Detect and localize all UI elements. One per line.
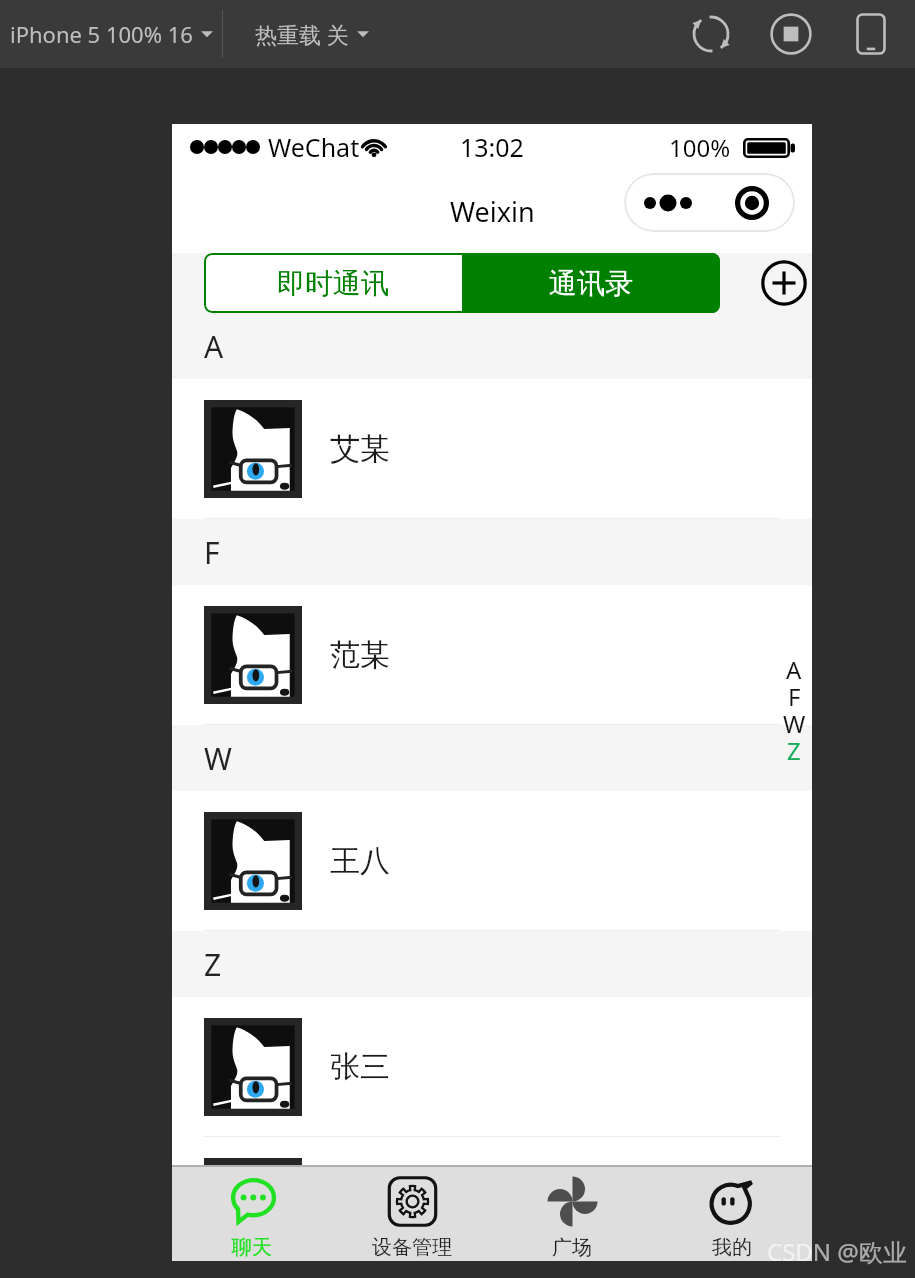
staticText: 我的: [712, 1235, 752, 1260]
button[interactable]: 即时通讯: [204, 253, 462, 313]
button[interactable]: 我的: [652, 1165, 812, 1261]
staticText: 艾某: [330, 430, 390, 468]
button[interactable]: Add contact: [760, 259, 808, 307]
button[interactable]: W: [778, 707, 810, 734]
staticText: 聊天: [232, 1235, 272, 1260]
button[interactable]: 范某: [172, 585, 812, 725]
staticText: 广场: [552, 1235, 592, 1260]
button[interactable]: 艾某: [172, 379, 812, 519]
staticText: Z: [204, 944, 222, 985]
button[interactable]: 通讯录: [462, 253, 720, 313]
button[interactable]: 设备管理: [332, 1165, 492, 1261]
button[interactable]: 热重载 关: [223, 0, 400, 68]
staticText: 范某: [330, 636, 390, 674]
staticText: 设备管理: [372, 1235, 452, 1260]
staticText: 张三: [330, 1048, 390, 1086]
staticText: Weixin: [450, 193, 535, 230]
staticText: WeChat: [268, 130, 360, 164]
button[interactable]: Device preview: [831, 0, 911, 68]
staticText: iPhone 5 100% 16: [10, 19, 193, 49]
staticText: Z: [787, 734, 801, 761]
staticText: F: [788, 680, 801, 707]
staticText: F: [204, 532, 220, 573]
button[interactable]: 王八: [172, 791, 812, 931]
staticText: 王八: [330, 842, 390, 880]
staticText: 热重载 关: [255, 19, 349, 49]
button[interactable]: 张三: [172, 997, 812, 1137]
staticText: W: [783, 707, 806, 734]
staticText: 即时通讯: [277, 266, 389, 301]
staticText: 13:02: [460, 130, 524, 164]
staticText: 通讯录: [549, 266, 633, 301]
staticText: A: [786, 653, 802, 680]
staticText: 100%: [669, 131, 731, 164]
staticText: A: [204, 326, 224, 367]
button[interactable]: Reload: [671, 0, 751, 68]
staticText: CSDN @欧业: [767, 1235, 907, 1268]
button[interactable]: A: [778, 653, 810, 680]
button[interactable]: iPhone 5 100% 16: [0, 0, 222, 68]
button[interactable]: Menu: [624, 173, 795, 232]
button[interactable]: Z: [778, 734, 810, 761]
button[interactable]: 聊天: [172, 1165, 332, 1261]
button[interactable]: 赵四: [172, 1137, 812, 1165]
button[interactable]: 广场: [492, 1165, 652, 1261]
button[interactable]: Stop: [751, 0, 831, 68]
button[interactable]: F: [778, 680, 810, 707]
staticText: W: [204, 738, 232, 779]
